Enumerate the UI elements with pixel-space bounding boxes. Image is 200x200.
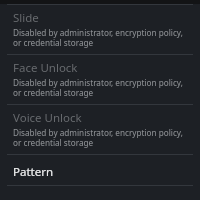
staticText: Pattern	[13, 164, 54, 180]
staticText: Disabled by administrator, encryption po…	[13, 77, 190, 98]
button[interactable]: Face Unlock	[0, 55, 200, 104]
staticText: Disabled by administrator, encryption po…	[13, 27, 190, 48]
button[interactable]: Voice Unlock	[0, 105, 200, 154]
staticText: Face Unlock	[13, 60, 78, 76]
button[interactable]: Slide	[0, 5, 200, 54]
staticText: Disabled by administrator, encryption po…	[13, 127, 190, 148]
staticText: Slide	[13, 10, 39, 26]
button[interactable]: Pattern	[0, 155, 200, 185]
staticText: Voice Unlock	[13, 110, 82, 126]
